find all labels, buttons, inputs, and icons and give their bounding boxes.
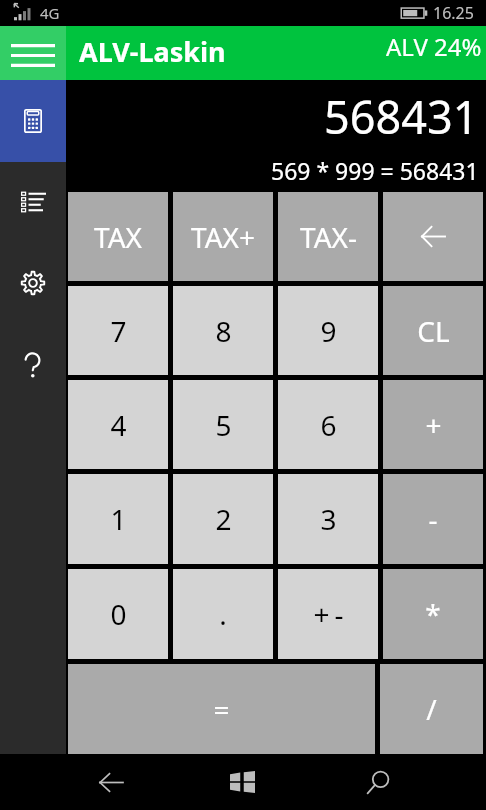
staticText: * — [425, 595, 441, 633]
staticText: 16.25 — [433, 2, 474, 24]
button[interactable]: Calculator — [0, 80, 66, 162]
button[interactable]: + — [383, 380, 483, 469]
other: Backspace — [421, 225, 446, 248]
button[interactable]: 4 — [68, 380, 168, 469]
staticText: / — [426, 690, 437, 728]
button[interactable]: 8 — [173, 286, 273, 375]
button[interactable]: Back — [0, 754, 180, 810]
staticText: 4G — [40, 3, 60, 23]
button[interactable]: 0 — [68, 569, 168, 659]
button[interactable]: 3 — [278, 474, 378, 564]
staticText: 568431 — [324, 86, 479, 147]
staticText: ALV 24% — [386, 30, 482, 63]
staticText: + — [425, 406, 442, 444]
staticText: 8 — [215, 312, 232, 350]
button[interactable]: Settings — [0, 241, 66, 324]
button[interactable]: +- — [278, 569, 378, 659]
button[interactable]: - — [383, 474, 483, 564]
staticText: = — [213, 690, 230, 728]
button[interactable]: Backspace — [383, 192, 483, 281]
staticText: - — [428, 500, 438, 538]
staticText: +- — [313, 595, 349, 633]
staticText: TAX- — [300, 218, 357, 256]
staticText: 4 — [110, 406, 127, 444]
button[interactable]: TAX+ — [173, 192, 273, 281]
staticText: 9 — [320, 312, 337, 350]
button[interactable]: History — [0, 162, 66, 241]
staticText: 569 * 999 = 568431 — [271, 155, 479, 186]
button[interactable]: / — [380, 664, 483, 754]
staticText: TAX+ — [191, 218, 255, 256]
button[interactable]: 1 — [68, 474, 168, 564]
button[interactable]: Start — [180, 754, 306, 810]
button[interactable]: 9 — [278, 286, 378, 375]
staticText: 2 — [215, 500, 232, 538]
button[interactable]: Menu — [0, 26, 66, 80]
staticText: 7 — [110, 312, 127, 350]
button[interactable]: 2 — [173, 474, 273, 564]
staticText: 3 — [320, 500, 337, 538]
staticText: TAX — [94, 218, 142, 256]
staticText: 0 — [110, 595, 127, 633]
button[interactable]: CL — [383, 286, 483, 375]
staticText: CL — [417, 312, 450, 350]
button[interactable]: 7 — [68, 286, 168, 375]
button[interactable]: * — [383, 569, 483, 659]
button[interactable]: TAX — [68, 192, 168, 281]
staticText: ALV-Laskin — [79, 33, 226, 70]
button[interactable]: Help — [0, 324, 66, 406]
button[interactable]: 6 — [278, 380, 378, 469]
button[interactable]: TAX- — [278, 192, 378, 281]
button[interactable]: . — [173, 569, 273, 659]
staticText: 5 — [215, 406, 232, 444]
button[interactable]: 5 — [173, 380, 273, 469]
staticText: 1 — [110, 500, 127, 538]
button[interactable]: Search — [306, 754, 486, 810]
staticText: . — [219, 595, 227, 633]
staticText: 6 — [320, 406, 337, 444]
button[interactable]: = — [68, 664, 375, 754]
